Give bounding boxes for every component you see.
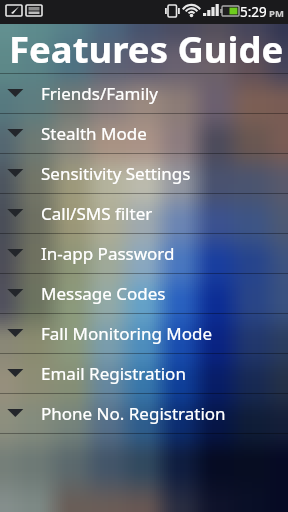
staticText: Stealth Mode — [41, 122, 147, 145]
button[interactable]: Fall Monitoring Mode — [0, 313, 288, 353]
staticText: Call/SMS filter — [41, 202, 153, 225]
staticText: 5:29 — [240, 3, 267, 21]
button[interactable]: Sensitivity Settings — [0, 153, 288, 193]
staticText: Fall Monitoring Mode — [41, 322, 213, 345]
button[interactable]: Email Registration — [0, 353, 288, 393]
button[interactable]: Phone No. Registration — [0, 393, 288, 433]
staticText: Email Registration — [41, 362, 186, 385]
staticText: PM — [269, 7, 284, 20]
button[interactable]: Call/SMS filter — [0, 193, 288, 233]
button[interactable]: Friends/Family — [0, 73, 288, 113]
staticText: Features Guide — [9, 24, 284, 73]
button[interactable]: Message Codes — [0, 273, 288, 313]
staticText: Message Codes — [41, 282, 166, 305]
staticText: In-app Password — [41, 242, 175, 265]
button[interactable]: Stealth Mode — [0, 113, 288, 153]
button[interactable]: In-app Password — [0, 233, 288, 273]
staticText: Sensitivity Settings — [41, 162, 191, 185]
staticText: Friends/Family — [41, 82, 158, 105]
staticText: Phone No. Registration — [41, 402, 226, 425]
